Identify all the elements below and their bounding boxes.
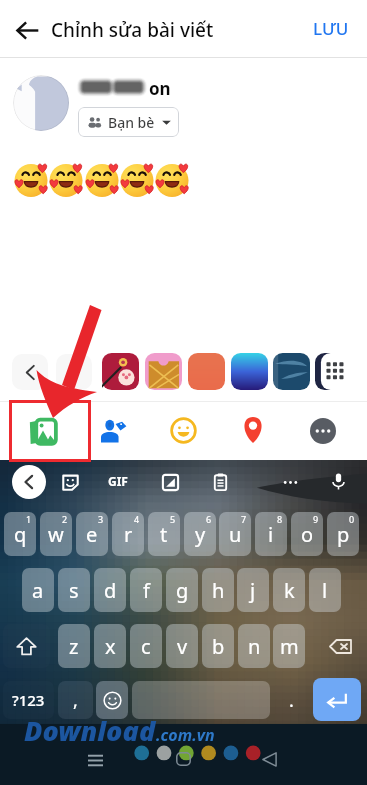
staticText: 7: [241, 513, 247, 525]
button[interactable]: i: [255, 512, 287, 556]
staticText: 5: [170, 513, 176, 525]
button[interactable]: Close toolbar: [12, 465, 46, 499]
staticText: 0: [349, 513, 355, 525]
staticText: 3: [98, 513, 104, 525]
staticText: v: [177, 633, 188, 660]
staticText: 4: [134, 513, 140, 525]
staticText: s: [69, 577, 79, 604]
button[interactable]: Previous: [12, 354, 48, 390]
staticText: on: [149, 77, 171, 100]
button[interactable]: x: [94, 624, 126, 668]
button[interactable]: r: [112, 512, 144, 556]
button[interactable]: s: [58, 568, 90, 612]
staticText: LƯU: [313, 17, 349, 40]
button[interactable]: More options: [310, 418, 336, 444]
staticText: t: [160, 521, 168, 548]
staticText: q: [14, 521, 27, 548]
button[interactable]: d: [94, 568, 126, 612]
staticText: i: [268, 521, 274, 548]
button[interactable]: Sticker pack: [145, 353, 182, 390]
button[interactable]: Keyboard tool: [209, 471, 231, 493]
button[interactable]: f: [130, 568, 162, 612]
button[interactable]: ,: [58, 681, 93, 719]
button[interactable]: GIF: [104, 471, 132, 491]
button[interactable]: b: [202, 624, 234, 668]
staticText: 9: [313, 513, 319, 525]
button[interactable]: Enter: [313, 678, 361, 721]
staticText: h: [212, 577, 225, 604]
button[interactable]: t: [148, 512, 180, 556]
button[interactable]: Sticker pack: [231, 353, 268, 390]
staticText: b: [212, 633, 225, 660]
button[interactable]: j: [237, 568, 269, 612]
staticText: o: [301, 521, 314, 548]
button[interactable]: n: [238, 624, 270, 668]
button[interactable]: Photo: [29, 418, 57, 446]
button[interactable]: y: [184, 512, 216, 556]
button[interactable]: .: [274, 681, 309, 719]
staticText: e: [86, 521, 98, 548]
button[interactable]: Shift: [3, 624, 50, 668]
staticText: Download: [24, 712, 156, 749]
button[interactable]: l: [309, 568, 341, 612]
staticText: 2: [62, 513, 68, 525]
staticText: c: [141, 633, 151, 660]
button[interactable]: w: [40, 512, 72, 556]
button[interactable]: Recent apps: [80, 745, 110, 775]
staticText: y: [195, 521, 206, 548]
staticText: Chỉnh sửa bài viết: [51, 17, 214, 43]
staticText: 8: [277, 513, 283, 525]
button[interactable]: Home: [176, 752, 191, 766]
button[interactable]: m: [273, 624, 305, 668]
button[interactable]: LƯU: [305, 12, 357, 44]
staticText: u: [229, 521, 242, 548]
staticText: GIF: [108, 473, 128, 489]
button[interactable]: Tag people: [101, 417, 128, 444]
button[interactable]: Back: [262, 752, 277, 767]
staticText: z: [69, 633, 79, 660]
button[interactable]: Sticker pack: [273, 353, 310, 390]
button[interactable]: h: [202, 568, 234, 612]
staticText: Bạn bè: [108, 113, 155, 132]
button[interactable]: Back: [11, 14, 43, 46]
button[interactable]: Location: [240, 417, 266, 443]
staticText: .: [289, 688, 294, 713]
button[interactable]: Sticker pack: [56, 354, 92, 390]
button[interactable]: Sticker pack: [188, 353, 225, 390]
button[interactable]: e: [76, 512, 108, 556]
staticText: k: [284, 577, 295, 604]
button[interactable]: Space: [132, 681, 270, 719]
button[interactable]: Feeling: [170, 417, 197, 444]
button[interactable]: Sticker pack: [315, 353, 352, 390]
staticText: j: [250, 577, 256, 604]
button[interactable]: Keyboard tool: [279, 471, 301, 493]
button[interactable]: c: [130, 624, 162, 668]
staticText: ,: [73, 688, 78, 713]
staticText: a: [32, 577, 44, 604]
button[interactable]: Sticker pack: [102, 353, 139, 390]
button[interactable]: Keyboard tool: [59, 471, 81, 493]
button[interactable]: q: [4, 512, 36, 556]
staticText: ?123: [12, 690, 45, 710]
staticText: f: [143, 577, 150, 604]
staticText: n: [248, 633, 261, 660]
button[interactable]: Emoji: [96, 681, 128, 719]
button[interactable]: Keyboard tool: [327, 470, 349, 492]
button[interactable]: p: [327, 512, 359, 556]
button[interactable]: Bạn bè: [78, 107, 179, 137]
staticText: .com.vn: [156, 724, 215, 746]
staticText: x: [105, 633, 116, 660]
button[interactable]: a: [22, 568, 54, 612]
button[interactable]: g: [166, 568, 198, 612]
staticText: 6: [206, 513, 212, 525]
button[interactable]: Backspace: [317, 624, 364, 668]
button[interactable]: v: [166, 624, 198, 668]
staticText: r: [124, 521, 133, 548]
button[interactable]: o: [291, 512, 323, 556]
button[interactable]: z: [58, 624, 90, 668]
button[interactable]: Keyboard tool: [159, 471, 181, 493]
button[interactable]: k: [273, 568, 305, 612]
staticText: l: [322, 577, 328, 604]
button[interactable]: u: [219, 512, 251, 556]
button[interactable]: ?123: [3, 681, 54, 719]
